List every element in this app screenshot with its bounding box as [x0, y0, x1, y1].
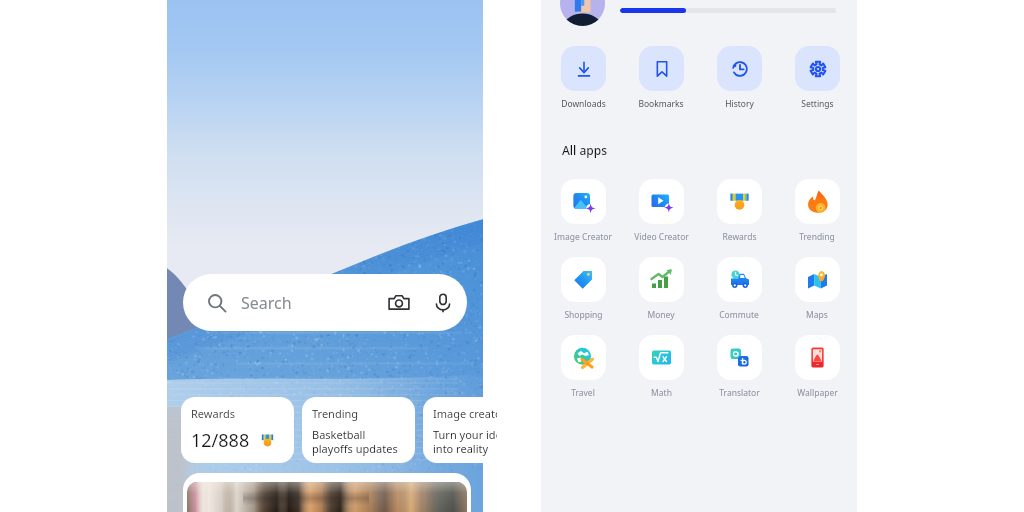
button[interactable]: History	[704, 46, 774, 110]
button[interactable]: Search	[183, 274, 467, 331]
staticText: Trending	[312, 406, 359, 421]
staticText: Video Creator	[634, 231, 689, 243]
button[interactable]: Image Creator	[548, 179, 618, 243]
staticText: Maps	[806, 309, 828, 321]
button[interactable]: Voice search	[432, 292, 454, 314]
button[interactable]: Trending	[302, 397, 415, 463]
staticText: Rewards	[722, 231, 757, 243]
button[interactable]: Settings	[782, 46, 852, 110]
button[interactable]	[183, 473, 471, 512]
staticText: Translator	[719, 387, 760, 399]
button[interactable]: Math	[626, 335, 696, 399]
staticText: Trending	[799, 231, 835, 243]
button[interactable]: Downloads	[548, 46, 618, 110]
button[interactable]: Commute	[704, 257, 774, 321]
button[interactable]: Rewards	[704, 179, 774, 243]
button[interactable]: Maps	[782, 257, 852, 321]
button[interactable]: Bookmarks	[626, 46, 696, 110]
staticText: Rewards	[191, 406, 235, 421]
staticText: Image Creator	[554, 231, 612, 243]
staticText: Money	[647, 309, 675, 321]
button[interactable]: Rewards	[181, 397, 294, 463]
staticText: Search	[241, 292, 292, 314]
button[interactable]: Travel	[548, 335, 618, 399]
staticText: 12/888	[191, 428, 250, 453]
staticText: Basketball playoffs updates	[312, 427, 398, 456]
button[interactable]: Profile	[560, 0, 605, 26]
staticText: Shopping	[564, 309, 603, 321]
staticText: Commute	[719, 309, 759, 321]
staticText: Settings	[801, 98, 834, 110]
staticText: Bookmarks	[638, 98, 684, 110]
button[interactable]: Shopping	[548, 257, 618, 321]
button[interactable]: Search with camera	[388, 292, 410, 314]
button[interactable]: Trending	[782, 179, 852, 243]
button[interactable]: Image creator	[423, 397, 497, 463]
button[interactable]: Translator	[704, 335, 774, 399]
staticText: Downloads	[561, 98, 606, 110]
staticText: History	[725, 98, 754, 110]
staticText: Wallpaper	[797, 387, 838, 399]
staticText: Image creator	[433, 406, 497, 421]
staticText: Turn your ideas into reality	[433, 427, 497, 456]
button[interactable]: Video Creator	[626, 179, 696, 243]
button[interactable]: Money	[626, 257, 696, 321]
staticText: All apps	[562, 142, 608, 158]
staticText: Math	[651, 387, 672, 399]
button[interactable]: Wallpaper	[782, 335, 852, 399]
other: Search	[207, 293, 227, 313]
staticText: Travel	[571, 387, 595, 399]
